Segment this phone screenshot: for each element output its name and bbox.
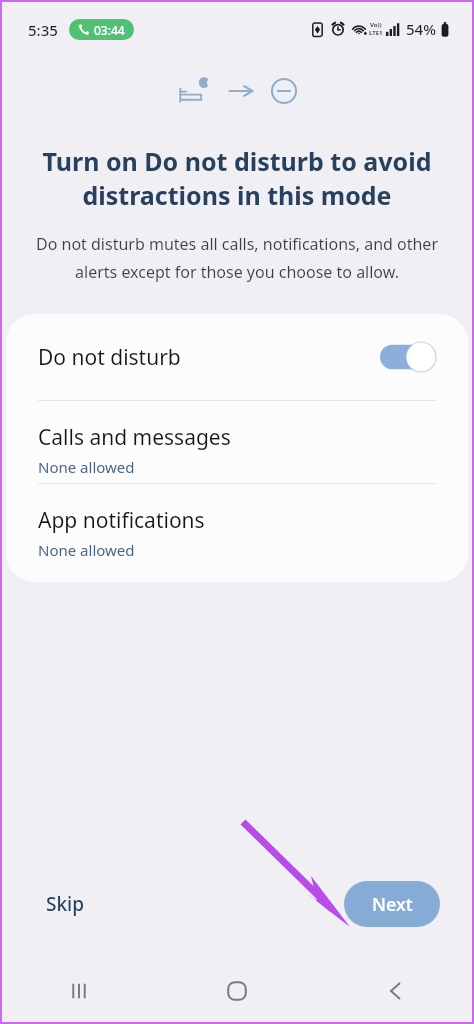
button[interactable]: Do not disturb toggle [380, 342, 436, 372]
button[interactable]: Do not disturb [6, 314, 468, 400]
staticText: App notifications [38, 506, 205, 535]
staticText: 54% [406, 19, 436, 39]
staticText: Do not disturb [38, 343, 380, 372]
staticText: Do not disturb mutes all calls, notifica… [30, 233, 444, 283]
staticText: Calls and messages [38, 423, 231, 452]
staticText: Next [372, 892, 413, 917]
button[interactable]: Calls and messages [6, 401, 468, 483]
staticText: None allowed [38, 457, 135, 477]
staticText: None allowed [38, 540, 135, 560]
staticText: 03:44 [94, 22, 125, 38]
button[interactable]: App notifications [6, 484, 468, 566]
button[interactable]: Home [158, 958, 316, 1024]
staticText: Turn on Do not disturb to avoid distract… [30, 144, 444, 213]
staticText: LTE1 [369, 29, 383, 37]
staticText: Skip [46, 891, 84, 917]
button[interactable]: Recent apps [0, 958, 158, 1024]
button[interactable]: Back [316, 958, 474, 1024]
button[interactable]: Skip [34, 881, 96, 927]
staticText: 5:35 [28, 20, 58, 40]
button[interactable]: Next [344, 881, 440, 927]
staticText: Vo)) [370, 21, 382, 29]
